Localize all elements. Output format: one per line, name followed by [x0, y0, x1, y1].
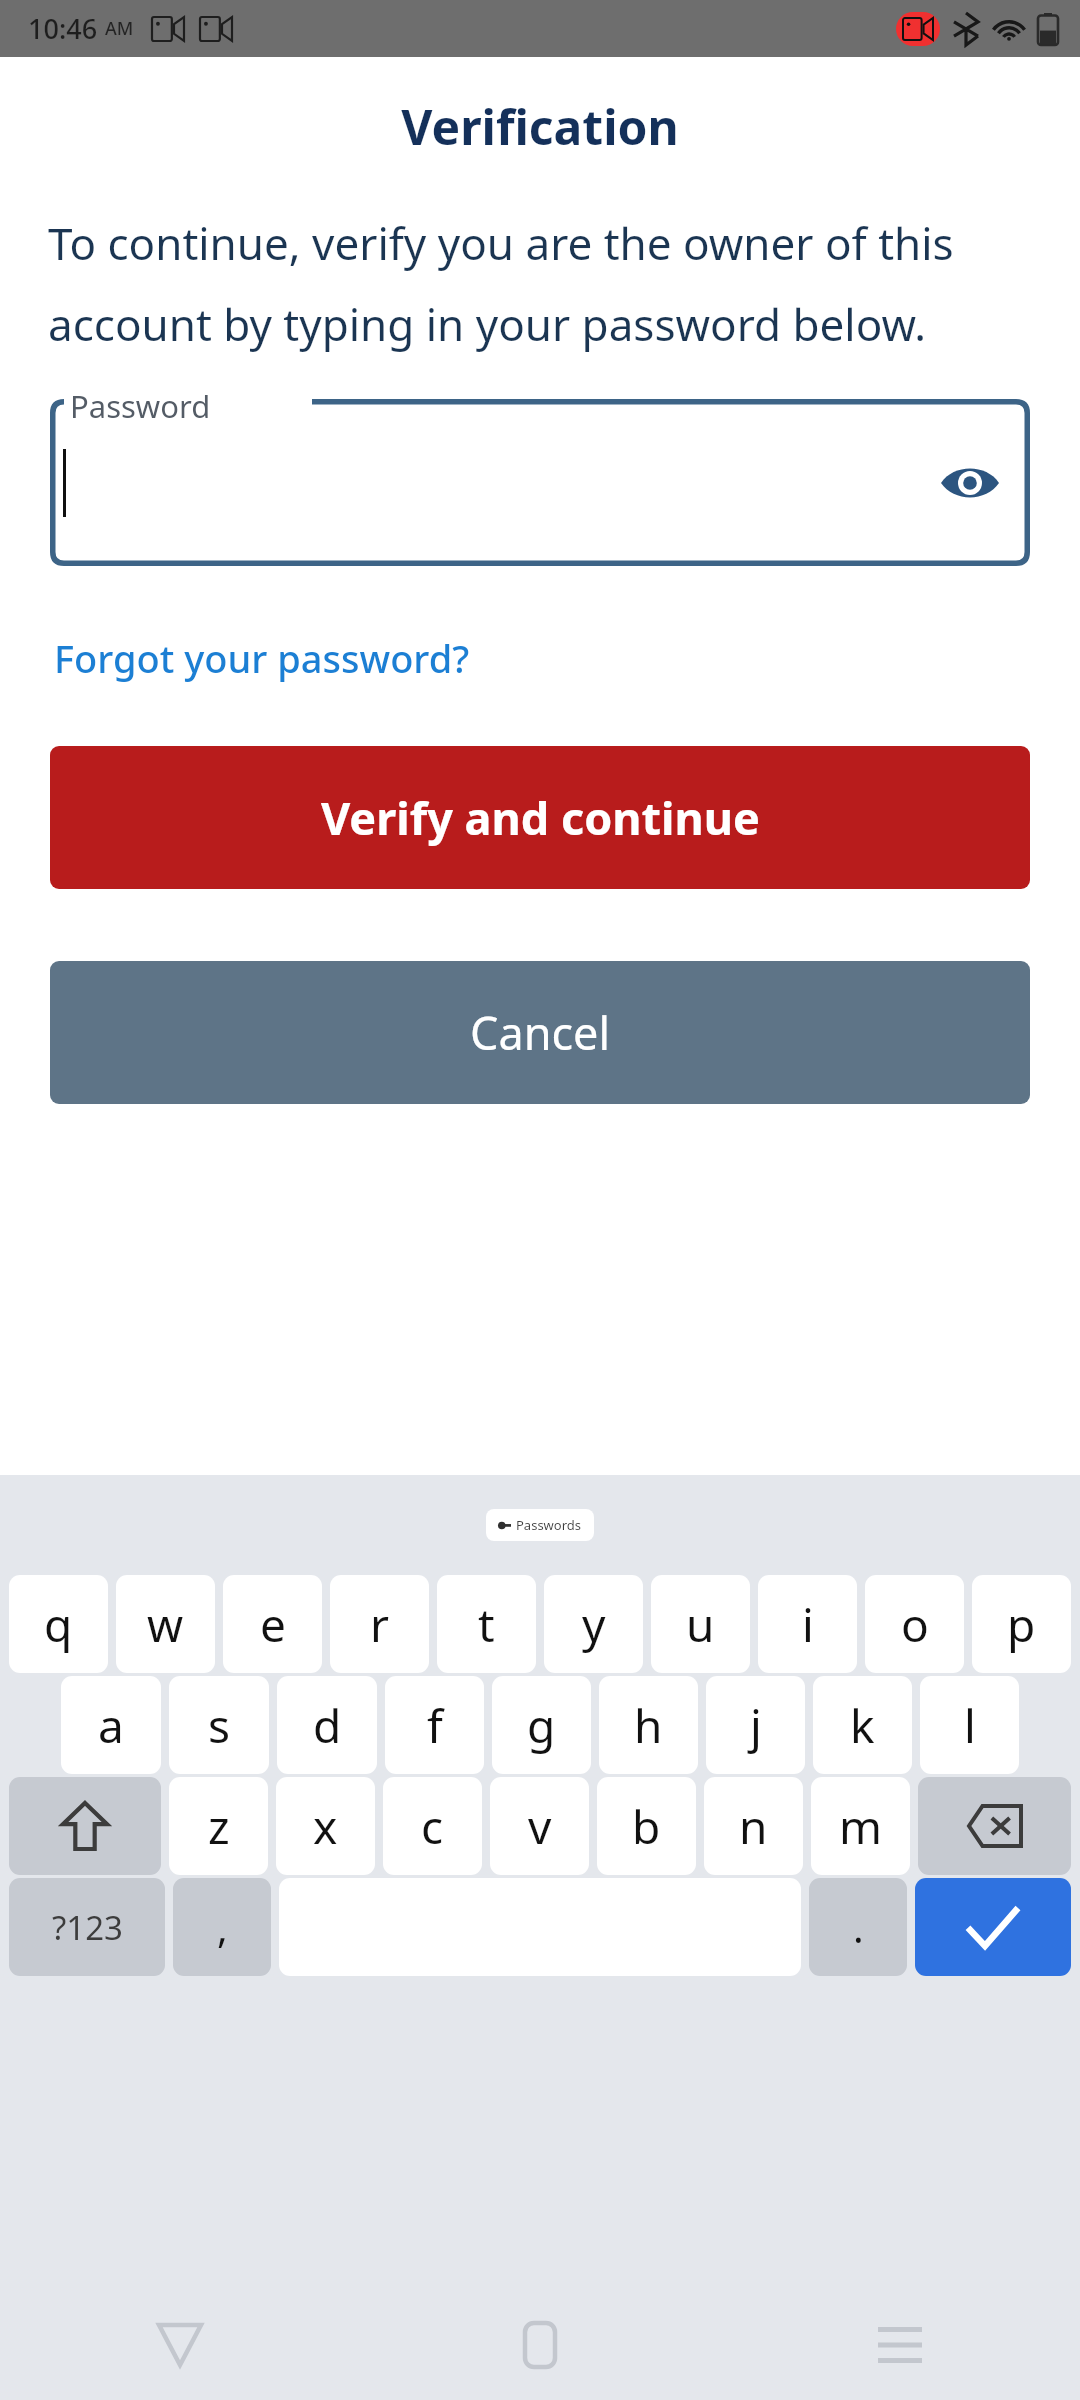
button[interactable]: ?123: [9, 1878, 165, 1976]
button[interactable]: b: [597, 1777, 696, 1875]
staticText: y: [582, 1593, 606, 1656]
button[interactable]: k: [813, 1676, 912, 1774]
button[interactable]: v: [490, 1777, 589, 1875]
staticText: c: [421, 1795, 444, 1858]
staticText: u: [686, 1593, 715, 1656]
button[interactable]: w: [116, 1575, 215, 1673]
button[interactable]: Verify and continue: [50, 746, 1030, 889]
button[interactable]: d: [277, 1676, 377, 1774]
staticText: Password: [70, 385, 211, 427]
staticText: h: [634, 1694, 663, 1757]
button[interactable]: o: [865, 1575, 964, 1673]
button[interactable]: g: [492, 1676, 591, 1774]
button[interactable]: Cancel: [50, 961, 1030, 1104]
staticText: s: [208, 1694, 231, 1757]
button[interactable]: f: [385, 1676, 484, 1774]
button[interactable]: x: [276, 1777, 375, 1875]
staticText: r: [370, 1593, 389, 1656]
button[interactable]: n: [704, 1777, 803, 1875]
button[interactable]: .: [809, 1878, 907, 1976]
staticText: x: [313, 1795, 338, 1858]
staticText: b: [632, 1795, 661, 1858]
staticText: a: [98, 1694, 124, 1757]
button[interactable]: p: [972, 1575, 1071, 1673]
button[interactable]: t: [437, 1575, 536, 1673]
staticText: k: [850, 1694, 875, 1757]
button[interactable]: i: [758, 1575, 857, 1673]
button[interactable]: r: [330, 1575, 429, 1673]
staticText: q: [44, 1593, 73, 1656]
button[interactable]: Enter: [915, 1878, 1071, 1976]
staticText: Verification: [0, 94, 1080, 159]
staticText: f: [427, 1694, 443, 1757]
staticText: d: [313, 1694, 342, 1757]
staticText: e: [260, 1593, 286, 1656]
button[interactable]: z: [169, 1777, 268, 1875]
button[interactable]: h: [599, 1676, 698, 1774]
staticText: ,: [217, 1900, 228, 1954]
button[interactable]: a: [61, 1676, 161, 1774]
staticText: Verify and continue: [321, 787, 760, 848]
button[interactable]: Forgot your password?: [50, 626, 474, 690]
staticText: v: [528, 1795, 552, 1858]
staticText: w: [147, 1593, 184, 1656]
button[interactable]: Backspace: [918, 1777, 1071, 1875]
button[interactable]: u: [651, 1575, 750, 1673]
button[interactable]: Shift: [9, 1777, 161, 1875]
button[interactable]: c: [383, 1777, 482, 1875]
button[interactable]: Passwords: [498, 1516, 582, 1534]
staticText: Cancel: [470, 1002, 611, 1063]
staticText: .: [853, 1900, 864, 1954]
staticText: 10:46: [28, 10, 98, 47]
staticText: Passwords: [516, 1516, 582, 1534]
button[interactable]: Back: [0, 2290, 360, 2400]
button[interactable]: q: [9, 1575, 108, 1673]
staticText: ?123: [52, 1905, 123, 1950]
staticText: i: [802, 1593, 814, 1656]
button[interactable]: l: [920, 1676, 1019, 1774]
button[interactable]: s: [169, 1676, 269, 1774]
staticText: j: [750, 1694, 762, 1757]
button[interactable]: j: [706, 1676, 805, 1774]
staticText: n: [739, 1795, 768, 1858]
button[interactable]: ,: [173, 1878, 271, 1976]
button[interactable]: Show password: [934, 447, 1006, 519]
button[interactable]: Home: [360, 2290, 720, 2400]
staticText: g: [527, 1694, 556, 1757]
button[interactable]: e: [223, 1575, 322, 1673]
staticText: m: [839, 1795, 883, 1858]
staticText: Forgot your password?: [54, 632, 470, 684]
button[interactable]: y: [544, 1575, 643, 1673]
staticText: To continue, verify you are the owner of…: [48, 213, 1040, 353]
button[interactable]: m: [811, 1777, 910, 1875]
staticText: z: [208, 1795, 230, 1858]
staticText: p: [1007, 1593, 1036, 1656]
staticText: l: [964, 1694, 976, 1757]
staticText: AM: [105, 16, 134, 41]
staticText: o: [901, 1593, 929, 1656]
button[interactable]: Recents: [720, 2290, 1080, 2400]
staticText: t: [478, 1593, 495, 1656]
